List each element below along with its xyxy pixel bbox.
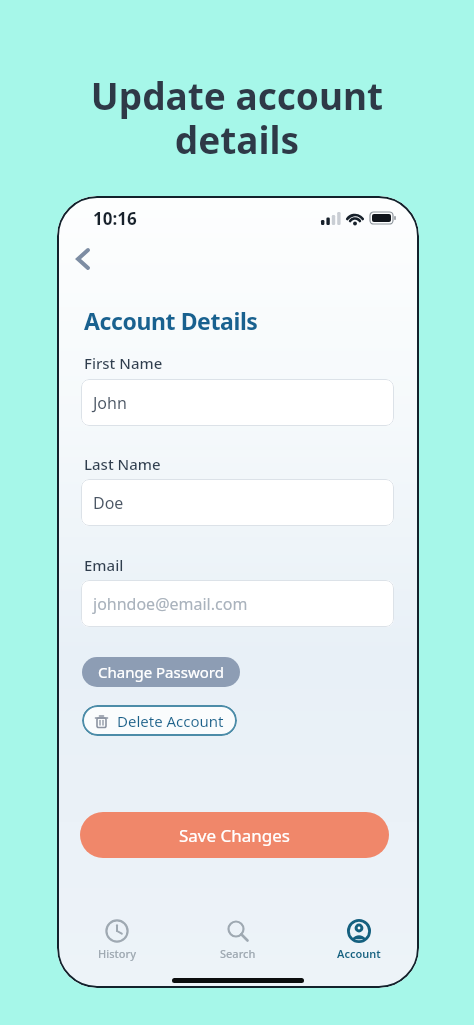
button[interactable]: John (81, 379, 394, 426)
button[interactable]: Save Changes (80, 812, 389, 858)
staticText: johndoe@email.com (93, 593, 248, 615)
staticText: Search (220, 946, 256, 961)
staticText: Change Password (98, 662, 224, 682)
staticText: Account Details (84, 305, 258, 336)
staticText: Account (337, 946, 381, 961)
staticText: Last Name (84, 454, 161, 474)
staticText: Email (84, 555, 124, 575)
button[interactable]: johndoe@email.com (81, 580, 394, 627)
button[interactable]: Delete Account (82, 705, 237, 736)
staticText: First Name (84, 353, 163, 373)
button[interactable]: History (57, 919, 177, 969)
button[interactable]: Search (177, 919, 298, 969)
button[interactable]: Account (298, 919, 419, 969)
button[interactable] (65, 241, 101, 277)
staticText: 10:16 (93, 207, 137, 230)
staticText: Save Changes (179, 824, 290, 847)
staticText: Doe (93, 492, 124, 514)
staticText: Update account details (0, 70, 474, 165)
button[interactable]: Change Password (82, 657, 240, 687)
staticText: Delete Account (117, 711, 224, 731)
staticText: History (98, 946, 136, 961)
staticText: John (93, 392, 127, 414)
button[interactable]: Doe (81, 479, 394, 526)
